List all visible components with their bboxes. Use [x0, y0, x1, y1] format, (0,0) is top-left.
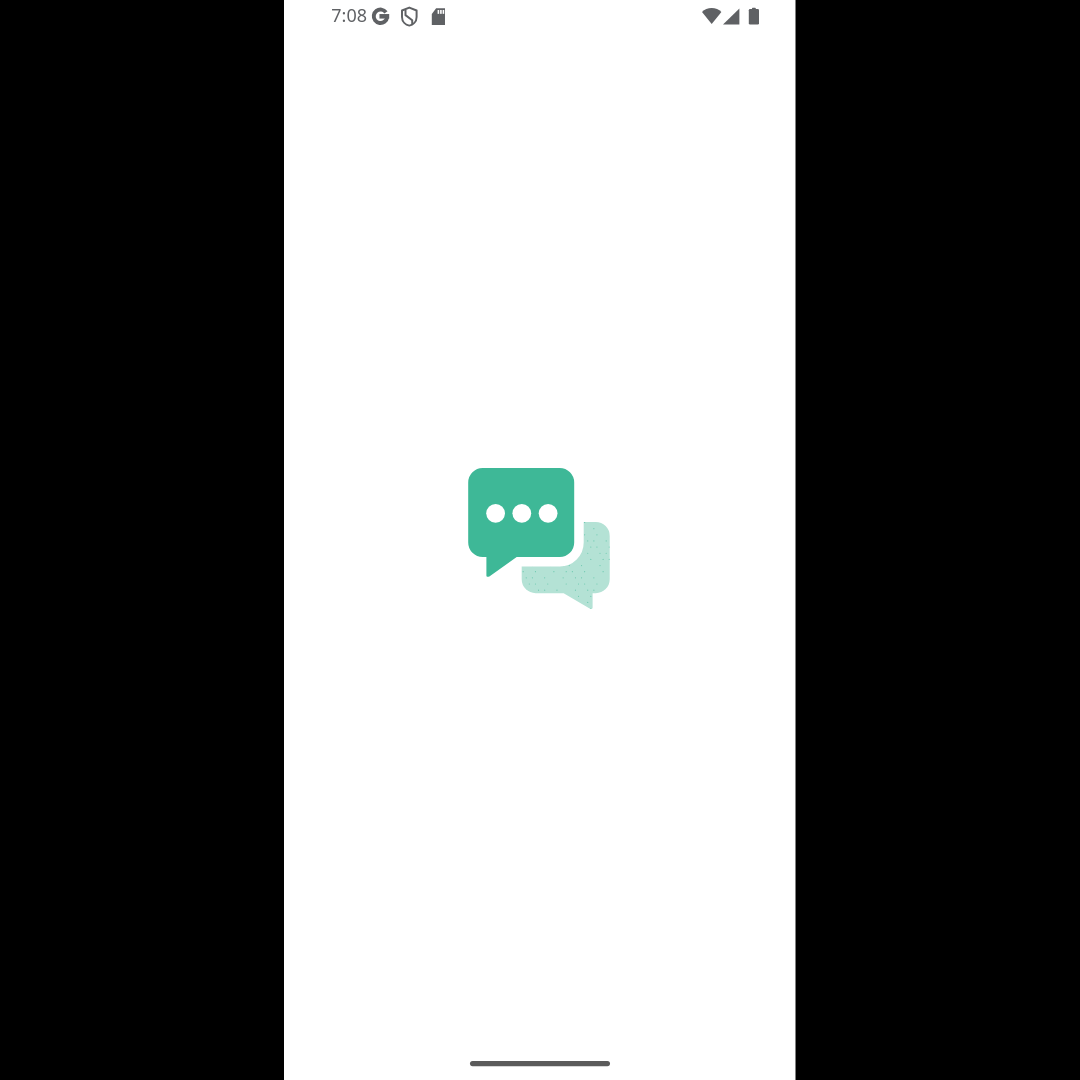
button[interactable]: Chat app logo — [455, 455, 625, 625]
button[interactable]: Status bar, 7:08 — [284, 0, 796, 36]
button[interactable]: Home gesture bar — [440, 1040, 640, 1074]
